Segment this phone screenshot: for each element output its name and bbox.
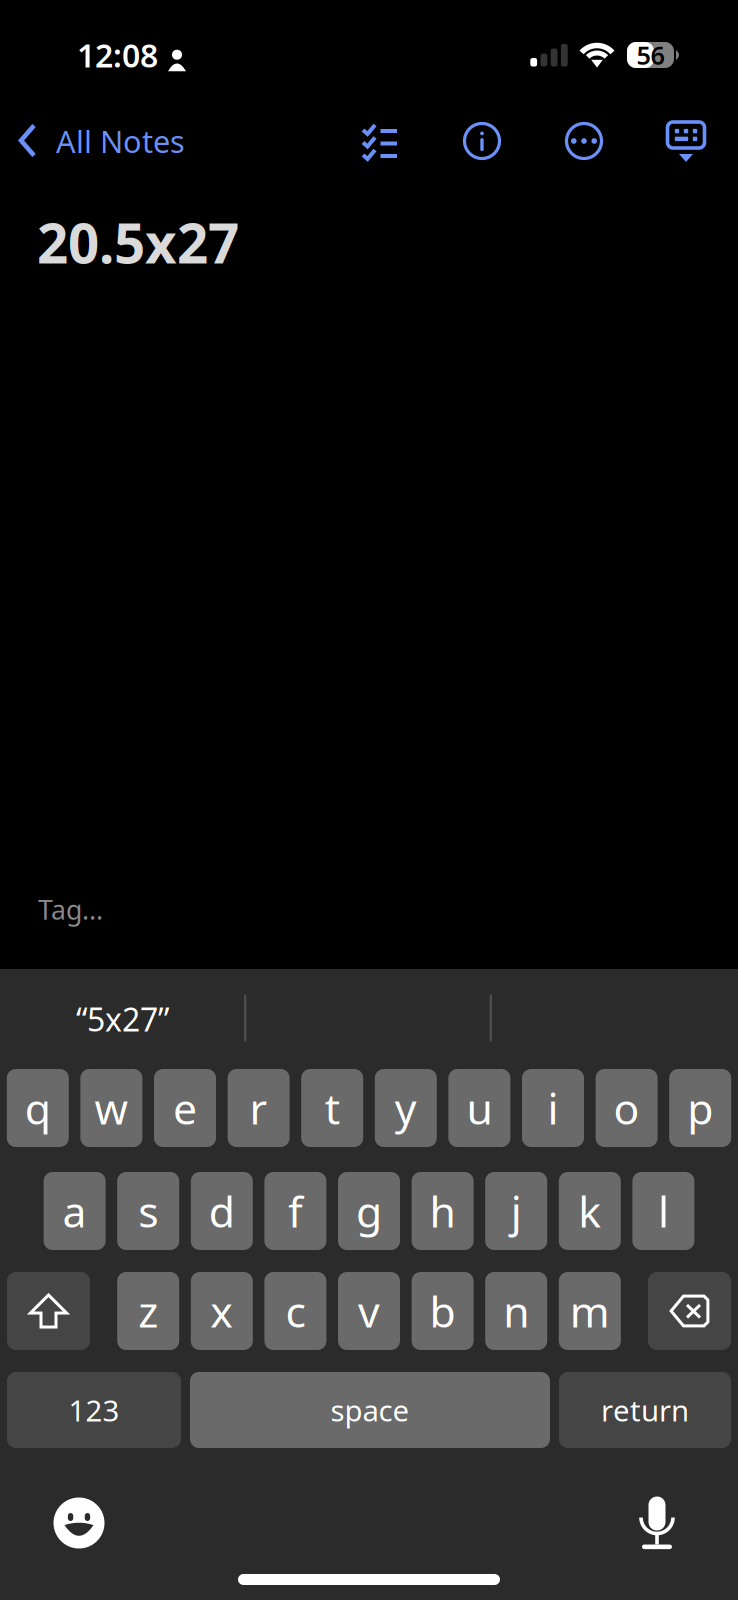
button[interactable]: p	[669, 1069, 731, 1147]
button[interactable]: Hide Keyboard	[648, 107, 724, 175]
button[interactable]: Checklist	[342, 107, 418, 175]
staticText: g	[356, 1183, 382, 1239]
staticText: i	[547, 1080, 558, 1136]
button[interactable]: r	[228, 1069, 290, 1147]
button[interactable]: c	[264, 1272, 326, 1350]
staticText: 123	[68, 1390, 119, 1429]
staticText: s	[138, 1183, 158, 1239]
staticText: j	[511, 1183, 522, 1239]
button[interactable]: h	[412, 1172, 474, 1250]
button[interactable]: Dictate	[639, 1496, 675, 1549]
button[interactable]: return	[559, 1372, 731, 1448]
staticText: m	[570, 1283, 610, 1339]
staticText: w	[94, 1080, 128, 1136]
staticText: u	[466, 1080, 492, 1136]
button[interactable]: t	[301, 1069, 363, 1147]
button[interactable]: a	[44, 1172, 106, 1250]
staticText: space	[330, 1390, 409, 1429]
button[interactable]: x	[191, 1272, 253, 1350]
staticText: c	[285, 1283, 305, 1339]
button[interactable]: Delete	[648, 1272, 731, 1350]
staticText: “5x27”	[76, 998, 169, 1040]
staticText: z	[138, 1283, 158, 1339]
staticText: x	[210, 1283, 233, 1339]
staticText: q	[25, 1080, 51, 1136]
button[interactable]: l	[632, 1172, 694, 1250]
staticText: p	[687, 1080, 713, 1136]
button[interactable]: m	[559, 1272, 621, 1350]
button[interactable]: y	[375, 1069, 437, 1147]
button[interactable]: “5x27”	[76, 998, 169, 1040]
button[interactable]: w	[80, 1069, 142, 1147]
button[interactable]: o	[596, 1069, 658, 1147]
button[interactable]: z	[117, 1272, 179, 1350]
button[interactable]: d	[191, 1172, 253, 1250]
staticText: e	[173, 1080, 197, 1136]
staticText: return	[601, 1390, 689, 1429]
staticText: v	[358, 1283, 380, 1339]
staticText: 12:08	[77, 34, 158, 76]
button[interactable]: i	[522, 1069, 584, 1147]
button[interactable]: Shift	[7, 1272, 90, 1350]
button[interactable]: Emoji	[52, 1496, 106, 1550]
button[interactable]: Tag...	[0, 892, 103, 927]
staticText: h	[430, 1183, 456, 1239]
button[interactable]: k	[559, 1172, 621, 1250]
button[interactable]: u	[448, 1069, 510, 1147]
staticText: 56	[636, 38, 664, 72]
staticText: l	[658, 1183, 669, 1239]
button[interactable]: space	[190, 1372, 550, 1448]
button[interactable]: b	[412, 1272, 474, 1350]
button[interactable]: n	[485, 1272, 547, 1350]
staticText: y	[395, 1080, 417, 1136]
button[interactable]: e	[154, 1069, 216, 1147]
staticText: f	[288, 1183, 303, 1239]
staticText: d	[209, 1183, 235, 1239]
button[interactable]: All Notes	[0, 104, 197, 178]
staticText: k	[578, 1183, 601, 1239]
staticText: n	[503, 1283, 529, 1339]
button[interactable]: j	[485, 1172, 547, 1250]
button[interactable]: More	[546, 107, 622, 175]
button[interactable]: Info	[444, 107, 520, 175]
button[interactable]: s	[117, 1172, 179, 1250]
staticText: b	[430, 1283, 456, 1339]
button[interactable]: q	[7, 1069, 69, 1147]
staticText: All Notes	[56, 121, 185, 161]
button[interactable]: f	[264, 1172, 326, 1250]
staticText: Tag...	[38, 892, 103, 927]
staticText: t	[325, 1080, 340, 1136]
button[interactable]: 123	[7, 1372, 181, 1448]
staticText: r	[250, 1080, 268, 1136]
staticText: a	[63, 1183, 87, 1239]
staticText: 20.5x27	[37, 206, 239, 279]
button[interactable]: g	[338, 1172, 400, 1250]
button[interactable]: v	[338, 1272, 400, 1350]
staticText: o	[614, 1080, 640, 1136]
